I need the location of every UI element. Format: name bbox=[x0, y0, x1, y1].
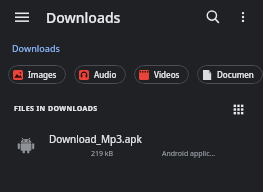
staticText: 219 kB bbox=[91, 149, 114, 159]
staticText: Videos bbox=[154, 69, 180, 80]
staticText: Images bbox=[28, 69, 57, 80]
button[interactable]: Documen bbox=[197, 65, 263, 84]
staticText: Android applic… bbox=[162, 149, 216, 159]
staticText: Downloads bbox=[46, 8, 121, 27]
button[interactable]: More options bbox=[229, 3, 257, 31]
staticText: Download_Mp3.apk bbox=[49, 132, 142, 146]
staticText: Documen bbox=[217, 69, 254, 80]
button[interactable]: Grid view bbox=[227, 99, 249, 119]
button[interactable]: Search bbox=[199, 3, 227, 31]
button[interactable]: Download_Mp3.apk bbox=[0, 125, 263, 165]
button[interactable]: Images bbox=[8, 65, 66, 84]
staticText: Downloads bbox=[12, 42, 60, 54]
button[interactable]: Audio bbox=[74, 65, 126, 84]
button[interactable]: Open navigation drawer bbox=[8, 3, 36, 31]
button[interactable]: Downloads bbox=[11, 41, 61, 55]
staticText: FILES IN DOWNLOADS bbox=[14, 104, 98, 114]
staticText: Audio bbox=[94, 69, 117, 80]
button[interactable]: Videos bbox=[134, 65, 189, 84]
